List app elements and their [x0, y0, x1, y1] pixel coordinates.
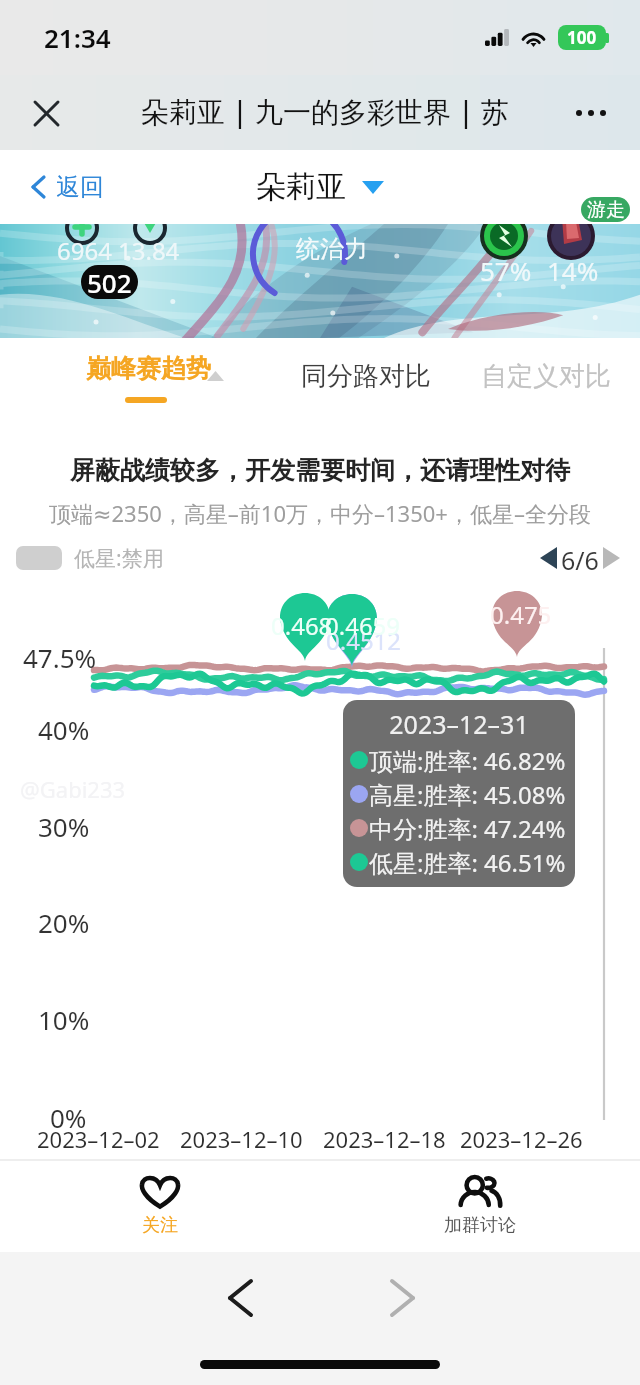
staticText: 0.4512: [326, 624, 402, 657]
button[interactable]: 关注: [0, 1160, 320, 1252]
staticText: 502: [87, 265, 132, 299]
staticText: 2023–12–02: [37, 1124, 160, 1154]
staticText: 14%: [547, 253, 599, 288]
staticText: 30%: [38, 809, 90, 844]
button[interactable]: Forward: [378, 1274, 426, 1322]
staticText: 47.5%: [23, 640, 97, 675]
button[interactable]: 朵莉亚: [256, 168, 384, 206]
button[interactable]: 加群讨论: [320, 1160, 640, 1252]
staticText: 返回: [56, 172, 104, 202]
button[interactable]: Back: [216, 1274, 264, 1322]
staticText: 高星:胜率: 45.08%: [369, 778, 566, 811]
staticText: @Gabi233: [20, 774, 126, 804]
button[interactable]: More options: [564, 86, 618, 140]
staticText: 6/6: [561, 543, 599, 573]
staticText: 0%: [50, 1100, 87, 1135]
staticText: 低星:胜率: 46.51%: [369, 846, 566, 879]
staticText: 朵莉亚: [256, 168, 346, 206]
staticText: 朵莉亚 | 九一的多彩世界 | 苏苏: [141, 92, 519, 130]
staticText: 中分:胜率: 47.24%: [369, 812, 566, 845]
staticText: 2023–12–10: [180, 1124, 303, 1154]
staticText: 0.475: [490, 598, 552, 631]
staticText: 屏蔽战绩较多，开发需要时间，还请理性对待: [0, 455, 640, 486]
staticText: 2023–12–26: [460, 1124, 583, 1154]
button[interactable]: 自定义对比: [477, 356, 615, 397]
button[interactable]: Close: [23, 90, 69, 136]
staticText: 13.84: [118, 234, 180, 267]
staticText: 40%: [38, 712, 90, 747]
staticText: 0.468: [271, 609, 333, 642]
button[interactable]: 游走: [581, 197, 630, 222]
button[interactable]: Next page: [599, 543, 624, 573]
staticText: 0.4659: [325, 609, 401, 642]
staticText: 57%: [480, 253, 532, 288]
staticText: 加群讨论: [444, 1214, 516, 1237]
button[interactable]: Previous page: [536, 543, 561, 573]
button[interactable]: 巅峰赛趋势: [43, 338, 250, 414]
staticText: 2023–12–31: [343, 707, 575, 741]
staticText: 10%: [38, 1002, 90, 1037]
staticText: 自定义对比: [481, 360, 611, 393]
staticText: 20%: [38, 905, 90, 940]
staticText: 顶端:胜率: 46.82%: [369, 744, 566, 777]
staticText: 同分路对比: [301, 360, 431, 393]
staticText: 100: [567, 26, 597, 49]
staticText: 关注: [142, 1214, 178, 1237]
staticText: 统治力: [296, 234, 368, 264]
staticText: 巅峰赛趋势: [86, 353, 211, 384]
staticText: 游走: [587, 198, 625, 222]
staticText: 2023–12–18: [323, 1124, 446, 1154]
button[interactable]: 返回: [26, 164, 110, 210]
staticText: 6964: [57, 234, 112, 267]
button[interactable]: 同分路对比: [297, 356, 435, 397]
staticText: 顶端≈2350，高星–前10万，中分–1350+，低星–全分段: [0, 498, 640, 528]
staticText: 21:34: [44, 20, 111, 55]
staticText: 低星:禁用: [74, 544, 164, 573]
